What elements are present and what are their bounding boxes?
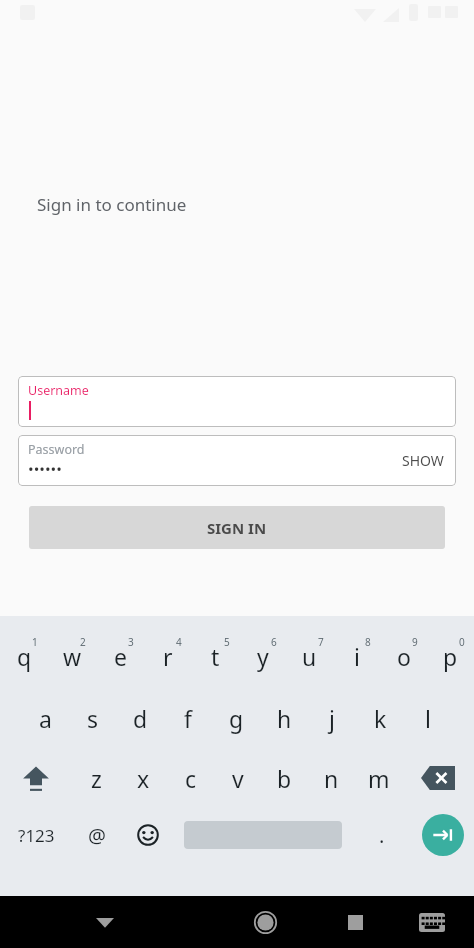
- staticText: i: [354, 641, 360, 672]
- button[interactable]: Back: [0, 896, 210, 948]
- staticText: m: [368, 763, 390, 794]
- staticText: 4: [176, 635, 182, 649]
- button[interactable]: 3: [96, 628, 144, 684]
- button[interactable]: Home: [210, 896, 320, 948]
- staticText: n: [324, 763, 339, 794]
- staticText: s: [87, 703, 99, 734]
- button[interactable]: 6: [239, 628, 286, 684]
- staticText: a: [39, 703, 52, 734]
- button[interactable]: Switch keyboard: [390, 896, 474, 948]
- button[interactable]: c: [167, 752, 214, 804]
- staticText: g: [229, 703, 244, 734]
- staticText: 8: [365, 635, 371, 649]
- staticText: 6: [271, 635, 277, 649]
- staticText: 3: [128, 635, 134, 649]
- button[interactable]: d: [116, 690, 164, 746]
- staticText: l: [425, 703, 431, 734]
- staticText: k: [374, 703, 387, 734]
- button[interactable]: z: [72, 752, 120, 804]
- staticText: y: [257, 641, 269, 672]
- button[interactable]: Username: [18, 376, 456, 427]
- staticText: @: [88, 822, 106, 849]
- staticText: w: [63, 641, 82, 672]
- staticText: 1: [32, 635, 38, 649]
- staticText: u: [302, 641, 317, 672]
- button[interactable]: a: [22, 690, 69, 746]
- button[interactable]: @: [72, 810, 122, 860]
- staticText: 0: [459, 635, 465, 649]
- button[interactable]: 1: [0, 628, 48, 684]
- button[interactable]: Password: [18, 435, 456, 486]
- button[interactable]: SIGN IN: [29, 506, 445, 549]
- staticText: 5: [224, 635, 230, 649]
- staticText: o: [397, 641, 411, 672]
- button[interactable]: 2: [48, 628, 96, 684]
- button[interactable]: l: [404, 690, 452, 746]
- button[interactable]: Enter: [422, 814, 464, 856]
- staticText: 9: [412, 635, 418, 649]
- staticText: ?123: [18, 824, 55, 847]
- button[interactable]: Emoji: [122, 810, 174, 860]
- staticText: Sign in to continue: [37, 193, 187, 216]
- staticText: z: [91, 763, 102, 794]
- staticText: h: [277, 703, 292, 734]
- staticText: e: [114, 641, 127, 672]
- button[interactable]: 7: [286, 628, 333, 684]
- staticText: SIGN IN: [207, 518, 267, 538]
- staticText: t: [211, 641, 220, 672]
- button[interactable]: 5: [192, 628, 239, 684]
- button[interactable]: k: [356, 690, 404, 746]
- staticText: .: [379, 822, 385, 849]
- staticText: q: [17, 641, 32, 672]
- button[interactable]: s: [69, 690, 116, 746]
- button[interactable]: Shift: [0, 752, 72, 804]
- staticText: ••••••: [28, 459, 62, 479]
- staticText: d: [133, 703, 148, 734]
- button[interactable]: m: [355, 752, 402, 804]
- staticText: p: [443, 641, 458, 672]
- staticText: Password: [28, 441, 85, 458]
- staticText: x: [137, 763, 150, 794]
- button[interactable]: 4: [144, 628, 192, 684]
- button[interactable]: 8: [333, 628, 380, 684]
- button[interactable]: ?123: [0, 810, 72, 860]
- button[interactable]: Backspace: [402, 752, 474, 804]
- staticText: 2: [80, 635, 86, 649]
- button[interactable]: v: [214, 752, 261, 804]
- staticText: SHOW: [402, 451, 444, 470]
- staticText: j: [329, 703, 335, 734]
- button[interactable]: f: [164, 690, 212, 746]
- button[interactable]: j: [308, 690, 356, 746]
- button[interactable]: 9: [380, 628, 427, 684]
- staticText: 7: [318, 635, 324, 649]
- button[interactable]: .: [352, 810, 412, 860]
- button[interactable]: n: [308, 752, 355, 804]
- staticText: f: [184, 703, 192, 734]
- staticText: Username: [28, 382, 89, 399]
- button[interactable]: SHOW: [390, 441, 456, 480]
- button[interactable]: Recents: [320, 896, 390, 948]
- staticText: b: [277, 763, 292, 794]
- staticText: c: [185, 763, 197, 794]
- button[interactable]: b: [261, 752, 308, 804]
- button[interactable]: h: [260, 690, 308, 746]
- button[interactable]: x: [120, 752, 167, 804]
- staticText: v: [232, 763, 244, 794]
- button[interactable]: g: [212, 690, 260, 746]
- button[interactable]: 0: [427, 628, 474, 684]
- staticText: r: [163, 641, 173, 672]
